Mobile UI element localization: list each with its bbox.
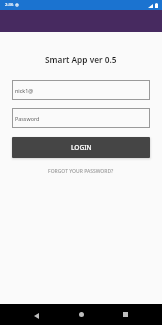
staticText: LOGIN	[71, 143, 92, 152]
button[interactable]: nick1@	[12, 80, 150, 100]
staticText: nick1@	[15, 87, 34, 94]
staticText: FORGOT YOUR PASSWORD?	[48, 168, 114, 175]
staticText: 2:36	[5, 2, 14, 8]
staticText: Password	[15, 115, 40, 122]
button[interactable]: FORGOT YOUR PASSWORD?	[42, 166, 120, 177]
button[interactable]: Password	[12, 108, 150, 128]
other: Settings	[15, 3, 19, 7]
button[interactable]: Back	[24, 305, 48, 325]
button[interactable]: Home	[69, 304, 93, 325]
button[interactable]: LOGIN	[12, 137, 150, 158]
staticText: Smart App ver 0.5	[45, 54, 117, 65]
button[interactable]: Recent apps	[113, 304, 137, 325]
